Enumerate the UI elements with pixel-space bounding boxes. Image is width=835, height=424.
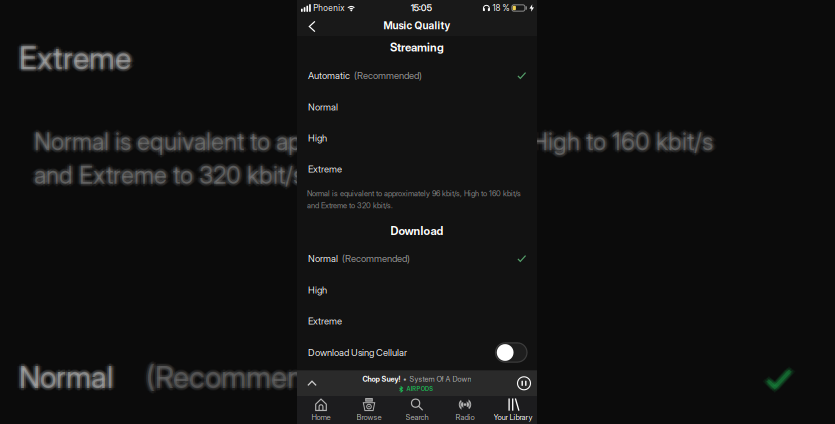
staticText: Automatic bbox=[308, 70, 350, 81]
staticText: Normal bbox=[19, 361, 113, 397]
staticText: 15:05 bbox=[411, 2, 432, 13]
staticText: Normal bbox=[17, 359, 111, 395]
staticText: (Recommended) bbox=[148, 357, 364, 394]
staticText: and Extreme to 320 kbit/s. bbox=[30, 160, 305, 189]
staticText: Download Using Cellular bbox=[308, 347, 407, 358]
button[interactable]: Automatic bbox=[297, 60, 537, 91]
staticText: Radio bbox=[455, 413, 474, 422]
staticText: Extreme bbox=[308, 315, 342, 327]
staticText: (Recommended) bbox=[146, 361, 362, 397]
staticText: Extreme bbox=[19, 42, 131, 79]
staticText: and Extreme to 320 kbit/s. bbox=[38, 160, 313, 189]
staticText: (Recommended) bbox=[148, 360, 364, 397]
staticText: Normal is equivalent to approximately 96… bbox=[32, 128, 711, 157]
button[interactable]: Normal bbox=[297, 91, 537, 123]
staticText: • bbox=[403, 375, 407, 383]
staticText: (Recommended) bbox=[144, 357, 360, 394]
staticText: Normal bbox=[308, 101, 338, 113]
staticText: Extreme bbox=[17, 38, 129, 75]
staticText: and Extreme to 320 kbit/s. bbox=[32, 160, 307, 189]
staticText: Extreme bbox=[15, 39, 127, 76]
staticText: Your Library bbox=[493, 413, 532, 422]
staticText: Extreme bbox=[21, 38, 133, 75]
staticText: Normal bbox=[308, 253, 338, 264]
staticText: 18 % bbox=[492, 3, 509, 13]
staticText: Normal is equivalent to approximately 96… bbox=[34, 129, 713, 158]
staticText: Normal bbox=[17, 357, 111, 394]
staticText: Extreme bbox=[19, 36, 131, 73]
staticText: (Recommended) bbox=[354, 70, 422, 81]
button[interactable]: Your Library bbox=[489, 396, 537, 423]
button[interactable]: Back bbox=[302, 16, 322, 36]
staticText: (Recommended) bbox=[144, 359, 360, 395]
button[interactable]: Extreme bbox=[297, 305, 537, 337]
button[interactable]: High bbox=[297, 274, 537, 306]
staticText: Normal bbox=[23, 359, 117, 395]
staticText: Extreme bbox=[21, 41, 133, 78]
button[interactable]: Home bbox=[297, 396, 345, 423]
staticText: Download bbox=[390, 224, 443, 238]
staticText: and Extreme to 320 kbit/s. bbox=[36, 160, 311, 189]
button[interactable]: Browse bbox=[345, 396, 393, 423]
staticText: (Recommended) bbox=[146, 362, 362, 398]
staticText: (Recommended) bbox=[142, 359, 358, 395]
staticText: (Recommended) bbox=[146, 359, 362, 395]
staticText: Normal is equivalent to approximately 96… bbox=[38, 127, 717, 156]
staticText: and Extreme to 320 kbit/s. bbox=[34, 157, 309, 186]
button[interactable]: Radio bbox=[441, 396, 489, 423]
staticText: Normal is equivalent to approximately 96… bbox=[34, 127, 713, 156]
button[interactable]: Normal bbox=[297, 243, 537, 274]
staticText: (Recommended) bbox=[148, 359, 364, 395]
staticText: and Extreme to 320 kbit/s. bbox=[36, 159, 311, 188]
staticText: Normal bbox=[19, 356, 113, 392]
staticText: and Extreme to 320 kbit/s. bbox=[36, 162, 311, 191]
staticText: Extreme bbox=[17, 41, 129, 78]
staticText: (Recommended) bbox=[342, 253, 410, 264]
staticText: Normal bbox=[19, 357, 113, 393]
staticText: Search bbox=[405, 413, 428, 422]
staticText: and Extreme to 320 kbit/s. bbox=[32, 162, 307, 191]
staticText: Chop Suey! bbox=[363, 375, 401, 383]
staticText: Extreme bbox=[19, 39, 131, 76]
staticText: Normal bbox=[19, 362, 113, 398]
button[interactable]: Search bbox=[393, 396, 441, 423]
staticText: Normal is equivalent to approximately 96… bbox=[34, 124, 713, 153]
staticText: Extreme bbox=[19, 37, 131, 74]
staticText: Home bbox=[311, 413, 330, 422]
staticText: (Recommended) bbox=[144, 360, 360, 397]
staticText: Extreme bbox=[21, 39, 133, 76]
staticText: High bbox=[308, 284, 327, 296]
button[interactable]: Download Using Cellular bbox=[297, 336, 537, 368]
staticText: Normal is equivalent to approximately 96… bbox=[34, 130, 713, 159]
staticText: Normal is equivalent to approximately 96… bbox=[32, 127, 711, 156]
staticText: Normal bbox=[21, 357, 115, 394]
staticText: and Extreme to 320 kbit/s. bbox=[34, 162, 309, 191]
staticText: Browse bbox=[356, 413, 381, 422]
staticText: Normal is equivalent to approximately 96… bbox=[36, 128, 715, 157]
staticText: Normal is equivalent to approximately 96… bbox=[307, 189, 521, 198]
button[interactable]: High bbox=[297, 122, 537, 154]
staticText: Normal bbox=[15, 359, 109, 395]
staticText: Normal bbox=[19, 359, 113, 395]
staticText: (Recommended) bbox=[150, 359, 366, 395]
staticText: AIRPODS bbox=[407, 385, 433, 392]
button[interactable]: Pause bbox=[515, 375, 532, 392]
button[interactable]: Extreme bbox=[297, 153, 537, 185]
button[interactable]: Expand player bbox=[304, 376, 320, 390]
staticText: (Recommended) bbox=[146, 357, 362, 393]
staticText: Normal bbox=[17, 360, 111, 397]
staticText: Normal is equivalent to approximately 96… bbox=[36, 125, 715, 154]
staticText: System Of A Down bbox=[409, 375, 471, 383]
staticText: High bbox=[308, 132, 327, 144]
staticText: Normal bbox=[21, 359, 115, 395]
staticText: Extreme bbox=[23, 39, 135, 76]
staticText: and Extreme to 320 kbit/s. bbox=[34, 163, 309, 192]
staticText: Music Quality bbox=[383, 19, 450, 32]
staticText: Normal is equivalent to approximately 96… bbox=[30, 127, 709, 156]
staticText: and Extreme to 320 kbit/s. bbox=[32, 159, 307, 188]
staticText: Normal is equivalent to approximately 96… bbox=[32, 125, 711, 154]
staticText: Streaming bbox=[390, 41, 444, 54]
staticText: and Extreme to 320 kbit/s. bbox=[307, 201, 393, 210]
staticText: Normal is equivalent to approximately 96… bbox=[36, 127, 715, 156]
staticText: Extreme bbox=[19, 41, 131, 78]
